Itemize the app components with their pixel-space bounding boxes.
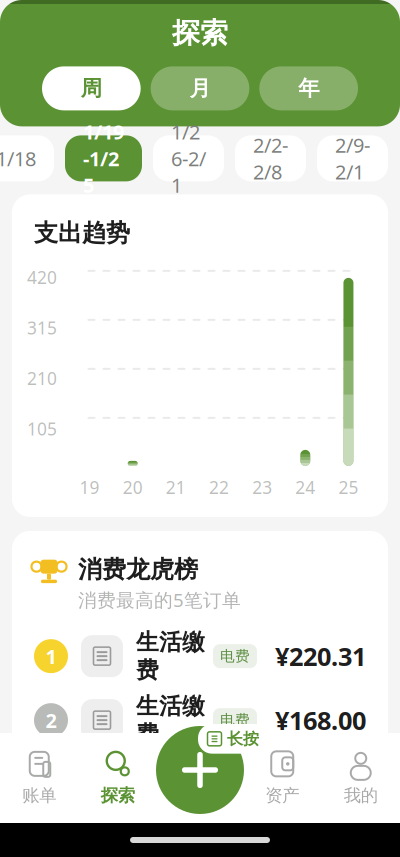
staticText: 315 [27,316,57,339]
staticText: 2/2-2/8 [253,132,288,185]
staticText: 电费 [220,647,250,665]
staticText: 其他 [136,822,182,850]
button[interactable]: 2 [12,688,388,752]
staticText: 1 [45,643,56,669]
staticText: 资产 [265,785,299,806]
button[interactable]: 2/2-2/8 [235,135,306,181]
button[interactable]: 3 [12,752,388,816]
button[interactable]: 资产 [243,735,321,821]
staticText: 21 [166,476,186,499]
staticText: 年 [298,75,319,101]
button[interactable]: 1/19-1/25 [65,135,142,181]
staticText: 月 [189,75,210,101]
button[interactable]: 4 [12,816,388,857]
staticText: 长按 [227,729,259,749]
staticText: 210 [27,367,57,390]
button[interactable]: 1 [12,624,388,688]
staticText: 3 [45,771,56,797]
staticText: 1/19-1/25 [83,119,124,198]
staticText: 小杜 [197,827,227,845]
staticText: 探索 [172,16,228,50]
staticText: 2/9-2/1 [335,132,370,185]
button[interactable]: Add record [156,726,244,814]
button[interactable]: 1/18 [0,135,54,181]
staticText: 生活缴费 [136,628,205,684]
staticText: 账单 [22,785,56,806]
button[interactable]: 年 [259,66,358,110]
staticText: 消费最高的5笔订单 [78,587,241,612]
staticText: 19 [80,476,100,499]
staticText: 小杜 [197,762,227,780]
staticText: ¥168.00 [275,703,366,737]
button[interactable]: 账单 [0,735,78,821]
staticText: KFC [136,787,170,811]
button[interactable]: 1/26-2/1 [153,135,224,181]
staticText: 消费龙虎榜 [78,555,198,584]
button[interactable]: 我的 [321,735,400,821]
staticText: 420 [27,266,57,289]
staticText: 2 [45,707,56,733]
staticText: 1/26-2/1 [171,119,206,198]
staticText: ¥220.31 [275,639,366,673]
button[interactable]: 探索 [78,735,157,821]
staticText: 24 [295,476,315,499]
staticText: 生活缴费 [136,692,205,748]
staticText: ¥32.00 [289,767,366,801]
staticText: 我的 [344,785,378,806]
staticText: 23 [252,476,272,499]
staticText: 餐饮 [136,757,182,785]
staticText: 105 [27,417,57,440]
staticText: 周 [81,75,102,101]
staticText: 20 [123,476,143,499]
staticText: 支出趋势 [34,218,130,248]
staticText: 25 [338,476,358,499]
button[interactable]: 周 [42,66,141,110]
staticText: 1/18 [0,145,36,172]
staticText: 探索 [101,785,135,806]
button[interactable]: 2/9-2/1 [317,135,388,181]
staticText: 22 [209,476,229,499]
button[interactable]: 月 [151,66,249,110]
staticText: 电费 [220,711,250,729]
